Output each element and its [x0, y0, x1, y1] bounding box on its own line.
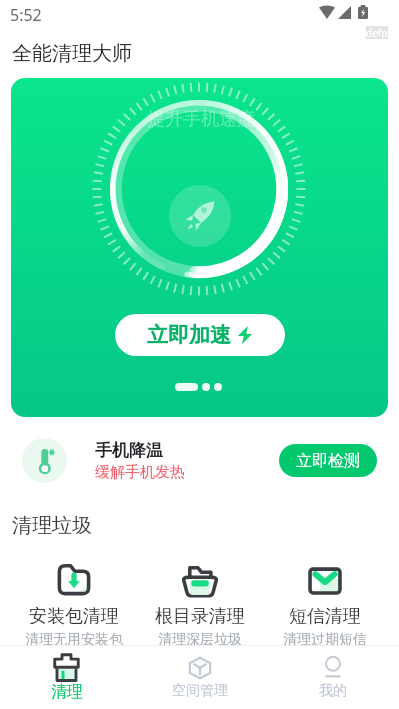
staticText: 根目录清理: [155, 605, 245, 628]
staticText: 清理垃圾: [12, 513, 92, 538]
button[interactable]: 立即加速: [115, 314, 285, 356]
staticText: 5:52: [10, 4, 42, 26]
button[interactable]: 根目录清理: [137, 558, 263, 650]
staticText: 我的: [319, 682, 347, 700]
button[interactable]: 提升手机速度: [11, 78, 388, 417]
staticText: 空间管理: [172, 682, 228, 700]
staticText: 全能清理大师: [12, 41, 132, 66]
staticText: 清理: [51, 682, 83, 702]
staticText: 立即检测: [296, 451, 360, 471]
button[interactable]: 立即检测: [279, 444, 377, 477]
staticText: defp: [366, 26, 388, 39]
button[interactable]: 空间管理: [133, 645, 266, 709]
staticText: 提升手机速度: [147, 108, 255, 131]
button[interactable]: 清理: [0, 645, 133, 709]
button[interactable]: 手机降温: [0, 430, 399, 490]
staticText: 清理无用安装包: [25, 631, 123, 649]
staticText: 清理过期短信: [283, 631, 367, 649]
staticText: 清理深层垃圾: [158, 631, 242, 649]
staticText: 短信清理: [289, 605, 361, 628]
staticText: 缓解手机发热: [95, 463, 185, 482]
staticText: 立即加速: [147, 322, 231, 348]
button[interactable]: 我的: [266, 645, 399, 709]
button[interactable]: 短信清理: [262, 558, 388, 650]
staticText: 手机降温: [95, 440, 163, 461]
staticText: 安装包清理: [29, 605, 119, 628]
button[interactable]: 安装包清理: [11, 558, 137, 650]
